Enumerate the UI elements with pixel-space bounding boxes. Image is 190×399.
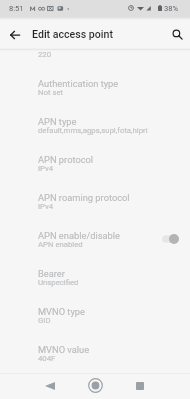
staticText: Bearer xyxy=(38,268,65,279)
staticText: GID xyxy=(38,316,51,325)
button[interactable]: APN type xyxy=(0,107,190,145)
button[interactable]: Authentication type xyxy=(0,69,190,107)
staticText: APN type xyxy=(38,116,77,127)
button[interactable]: APN enable/disable xyxy=(0,221,190,259)
button[interactable]: Recent apps xyxy=(127,373,153,398)
staticText: Unspecified xyxy=(38,278,79,287)
button[interactable]: APN protocol xyxy=(0,145,190,183)
button[interactable]: MVNO value xyxy=(0,335,190,355)
staticText: Not set xyxy=(38,88,64,97)
staticText: MVNO type xyxy=(38,306,85,317)
button[interactable]: Home xyxy=(82,373,108,398)
staticText: APN protocol xyxy=(38,154,94,165)
staticText: 220 xyxy=(38,50,52,59)
staticText: 404F xyxy=(38,354,56,363)
staticText: APN roaming protocol xyxy=(38,192,130,203)
button[interactable]: Bearer xyxy=(0,259,190,297)
staticText: IPv4 xyxy=(38,202,54,211)
staticText: Edit access point xyxy=(32,28,113,40)
staticText: MCC xyxy=(38,49,59,51)
button[interactable]: MVNO type xyxy=(0,297,190,335)
staticText: default,mms,agps,supl,fota,hipri xyxy=(38,126,148,135)
staticText: IPv4 xyxy=(38,164,54,173)
button[interactable]: Back xyxy=(37,373,63,398)
button[interactable]: MCC xyxy=(0,49,190,69)
staticText: Authentication type xyxy=(38,78,119,89)
button[interactable]: Toggle APN xyxy=(162,232,179,246)
button[interactable]: Back xyxy=(6,26,24,44)
staticText: MVNO value xyxy=(38,344,90,355)
staticText: APN enable/disable xyxy=(38,230,121,241)
staticText: 8:51 xyxy=(9,4,24,13)
button[interactable]: APN roaming protocol xyxy=(0,183,190,221)
staticText: APN enabled xyxy=(38,240,83,249)
staticText: 38% xyxy=(164,4,179,13)
button[interactable]: Search xyxy=(168,25,186,43)
